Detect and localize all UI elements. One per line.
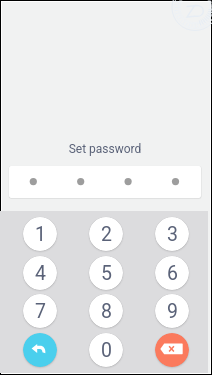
staticText: 9 xyxy=(167,300,178,323)
button[interactable] xyxy=(9,166,201,198)
staticText: 6 xyxy=(167,262,178,285)
staticText: 0 xyxy=(101,339,112,362)
staticText: 3 xyxy=(167,223,178,246)
button[interactable]: 1 xyxy=(23,217,57,251)
staticText: 5 xyxy=(101,262,112,285)
staticText: 2 xyxy=(101,223,112,246)
staticText: Set password xyxy=(1,142,209,156)
button[interactable]: 6 xyxy=(155,256,189,290)
staticText: 7 xyxy=(35,300,46,323)
button[interactable]: 9 xyxy=(155,294,189,328)
staticText: 4 xyxy=(35,262,46,285)
button[interactable]: 7 xyxy=(23,294,57,328)
button[interactable]: Back xyxy=(23,333,57,367)
button[interactable]: 0 xyxy=(89,333,123,367)
button[interactable]: 2 xyxy=(89,217,123,251)
button[interactable]: 3 xyxy=(155,217,189,251)
button[interactable]: 8 xyxy=(89,294,123,328)
staticText: 1 xyxy=(35,223,46,246)
staticText: 8 xyxy=(101,300,112,323)
button[interactable]: 5 xyxy=(89,256,123,290)
button[interactable]: 4 xyxy=(23,256,57,290)
button[interactable]: Delete xyxy=(155,333,189,367)
